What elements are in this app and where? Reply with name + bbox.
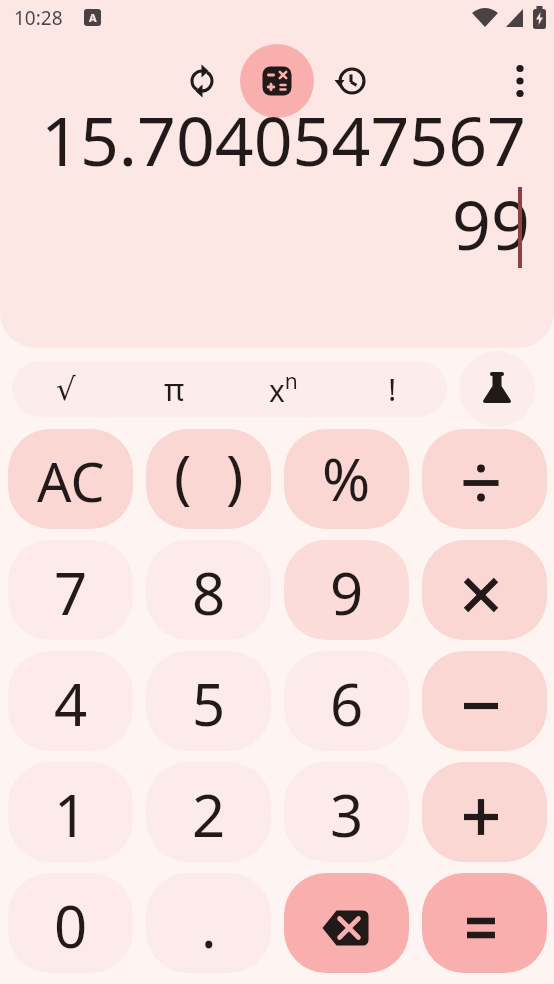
button[interactable]: 0 [8,873,133,973]
staticText: 8 [192,553,226,632]
staticText: 4 [54,664,88,743]
button[interactable] [422,651,547,751]
button[interactable] [333,63,369,99]
button[interactable] [422,540,547,640]
staticText: 1 [54,775,88,854]
button[interactable]: √ [12,361,120,417]
button[interactable]: AC [8,429,133,529]
staticText: 99 [452,177,530,270]
staticText: A [89,10,97,25]
button[interactable]: 6 [284,651,409,751]
staticText: 2 [192,775,226,854]
button[interactable]: 1 [8,762,133,862]
button[interactable]: ( [146,429,271,529]
button[interactable]: 9 [284,540,409,640]
staticText: 7 [54,553,88,632]
button[interactable]: 2 [146,762,271,862]
button[interactable] [422,762,547,862]
button[interactable]: . [146,873,271,973]
staticText: 0 [54,886,88,965]
staticText: ! [388,368,397,410]
staticText: √ [56,371,76,407]
staticText: xn [269,367,298,411]
button[interactable]: 7 [8,540,133,640]
staticText: 3 [330,775,364,854]
button[interactable]: xn [229,361,338,417]
staticText: 9 [330,553,364,632]
button[interactable] [185,64,219,98]
button[interactable]: 4 [8,651,133,751]
button[interactable]: 8 [146,540,271,640]
button[interactable]: ! [338,361,447,417]
button[interactable] [459,351,535,427]
button[interactable] [505,66,535,96]
staticText: ) [226,436,244,515]
staticText: % [322,439,371,518]
button[interactable]: 5 [146,651,271,751]
staticText: 6 [330,664,364,743]
staticText: ( [174,436,192,515]
button[interactable] [240,44,314,118]
staticText: 10:28 [14,5,63,31]
button[interactable]: % [284,429,409,529]
button[interactable] [422,429,547,529]
staticText: π [164,368,185,410]
button[interactable] [422,873,547,973]
staticText: . [201,886,217,965]
button[interactable] [284,873,409,973]
button[interactable]: π [120,361,229,417]
staticText: 5 [192,664,226,743]
staticText: 15.7040547567 [41,93,526,186]
button[interactable]: 3 [284,762,409,862]
staticText: AC [37,444,105,518]
